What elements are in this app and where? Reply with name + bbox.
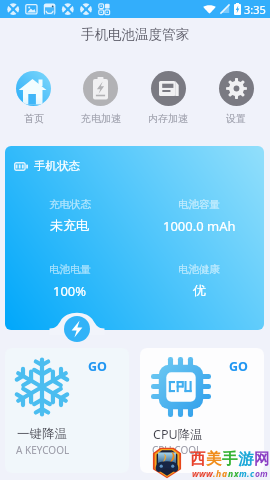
staticText: 一键降温 — [17, 426, 67, 442]
staticText: 100% — [53, 282, 87, 300]
staticText: h — [216, 468, 222, 480]
staticText: GO — [88, 358, 107, 375]
staticText: 游 — [238, 449, 254, 469]
staticText: GO — [229, 358, 248, 375]
staticText: 首页 — [24, 112, 44, 124]
staticText: 手 — [222, 449, 238, 469]
staticText: c — [250, 468, 255, 480]
staticText: x — [234, 468, 239, 480]
staticText: o — [255, 468, 260, 480]
button[interactable]: GO — [140, 348, 264, 473]
staticText: a — [222, 468, 228, 480]
staticText: 手机状态 — [34, 159, 80, 173]
staticText: 手机电池温度管家 — [81, 26, 189, 43]
staticText: w — [206, 468, 213, 480]
staticText: m — [260, 468, 268, 480]
staticText: 1000.0 mAh — [163, 217, 236, 235]
staticText: CPU降温 — [153, 426, 203, 443]
staticText: 电池容量 — [178, 198, 220, 211]
staticText: w — [199, 468, 206, 480]
button[interactable]: 内存加速 — [134, 66, 202, 124]
staticText: CPU COOL — [152, 443, 202, 457]
button[interactable]: 充电加速 — [67, 66, 134, 124]
staticText: 充电加速 — [81, 112, 121, 124]
button[interactable]: 设置 — [202, 66, 270, 124]
staticText: A KEYCOOL — [16, 443, 70, 457]
button[interactable]: 首页 — [0, 66, 67, 124]
staticText: m — [239, 468, 247, 480]
staticText: 电池健康 — [178, 263, 220, 276]
staticText: 3:35 — [244, 2, 266, 17]
button[interactable]: GO — [5, 348, 129, 473]
staticText: w — [192, 468, 199, 480]
staticText: 设置 — [226, 112, 246, 124]
staticText: 未充电 — [50, 217, 89, 233]
staticText: . — [213, 468, 216, 480]
staticText: 充电状态 — [49, 198, 91, 211]
staticText: 电池电量 — [49, 263, 91, 276]
staticText: . — [247, 468, 250, 480]
staticText: 优 — [193, 282, 206, 298]
staticText: 内存加速 — [148, 112, 188, 124]
staticText: 西 — [190, 449, 206, 469]
staticText: n — [228, 468, 234, 480]
staticText: 网 — [254, 449, 270, 469]
staticText: 美 — [206, 449, 222, 469]
